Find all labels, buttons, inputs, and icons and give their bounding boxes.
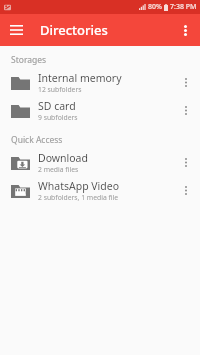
button[interactable]: Internal memory: [0, 68, 200, 96]
staticText: Internal memory: [38, 71, 122, 85]
button[interactable]: Download: [0, 148, 200, 176]
button[interactable]: More options for Internal memory: [173, 69, 199, 95]
staticText: Storages: [11, 54, 47, 66]
staticText: 9 subfolders: [38, 113, 78, 122]
staticText: 7:38 PM: [170, 2, 197, 12]
staticText: Directories: [40, 21, 108, 39]
staticText: SD card: [38, 99, 76, 113]
staticText: 2 subfolders, 1 media file: [38, 193, 119, 202]
staticText: 2 media files: [38, 165, 79, 174]
button[interactable]: More options for Download: [173, 149, 199, 175]
button[interactable]: WhatsApp Video: [0, 176, 200, 204]
staticText: Download: [38, 151, 88, 165]
staticText: 80%: [148, 2, 162, 12]
staticText: Quick Access: [11, 134, 63, 146]
staticText: WhatsApp Video: [38, 179, 120, 193]
button[interactable]: SD card: [0, 96, 200, 124]
button[interactable]: More options for SD card: [173, 97, 199, 123]
button[interactable]: More options: [172, 17, 198, 43]
button[interactable]: Open navigation drawer: [3, 17, 29, 43]
staticText: 12 subfolders: [38, 85, 82, 94]
button[interactable]: More options for WhatsApp Video: [173, 177, 199, 203]
